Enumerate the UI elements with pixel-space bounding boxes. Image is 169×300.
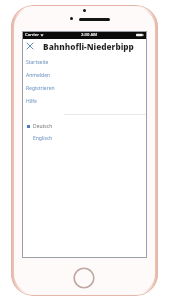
staticText: Deutsch — [33, 123, 53, 130]
button[interactable]: Englisch — [22, 132, 147, 144]
button[interactable]: Startseite — [22, 56, 147, 69]
staticText: Carrier — [25, 32, 39, 38]
staticText: Anmelden — [26, 72, 51, 79]
button[interactable]: Home — [73, 267, 95, 289]
staticText: Startseite — [26, 59, 49, 66]
staticText: Registrieren — [26, 85, 55, 92]
button[interactable]: Registrieren — [22, 82, 147, 95]
button[interactable]: Hilfe — [22, 95, 147, 108]
staticText: Hilfe — [26, 98, 37, 105]
staticText: Englisch — [33, 135, 53, 142]
button[interactable]: Close menu — [24, 40, 36, 52]
staticText: Bahnhofli-Niederbipp — [43, 41, 134, 52]
button[interactable]: Deutsch — [22, 120, 147, 132]
button[interactable]: Anmelden — [22, 69, 147, 82]
staticText: 2:30 AM — [81, 32, 98, 38]
